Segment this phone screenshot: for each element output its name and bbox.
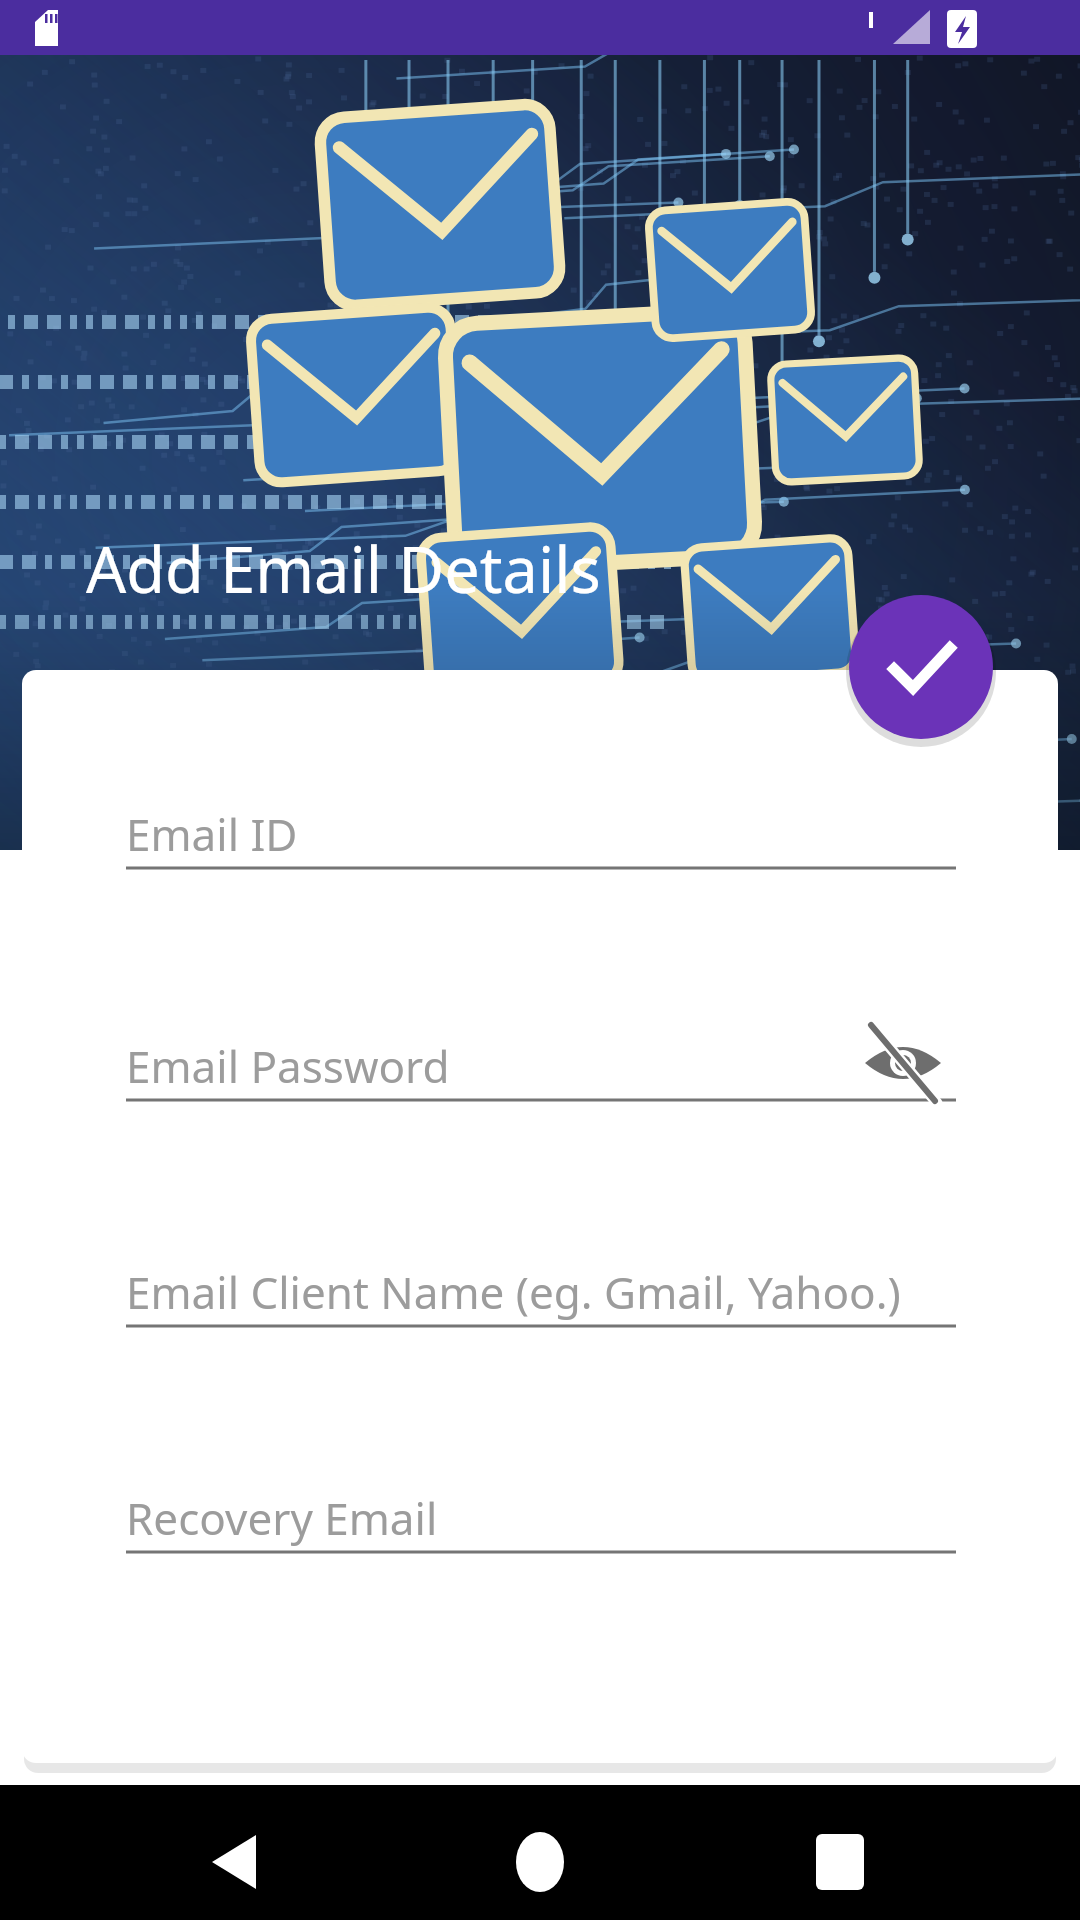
button[interactable]: Save	[849, 595, 993, 739]
button[interactable]: Email Password	[126, 1032, 956, 1100]
staticText: Email ID	[126, 804, 298, 864]
button[interactable]: Back	[175, 1802, 295, 1920]
button[interactable]: Email ID	[126, 800, 956, 868]
button[interactable]: Show password	[852, 1018, 964, 1118]
button[interactable]: Recovery Email	[126, 1484, 956, 1552]
staticText: Email Client Name (eg. Gmail, Yahoo.)	[126, 1262, 901, 1322]
staticText: Add Email Details	[86, 526, 601, 612]
button[interactable]: Recents	[780, 1802, 900, 1920]
button[interactable]: Home	[480, 1802, 600, 1920]
button[interactable]: Email Client Name (eg. Gmail, Yahoo.)	[126, 1258, 956, 1326]
staticText: Email Password	[126, 1036, 450, 1096]
staticText: Recovery Email	[126, 1488, 438, 1548]
